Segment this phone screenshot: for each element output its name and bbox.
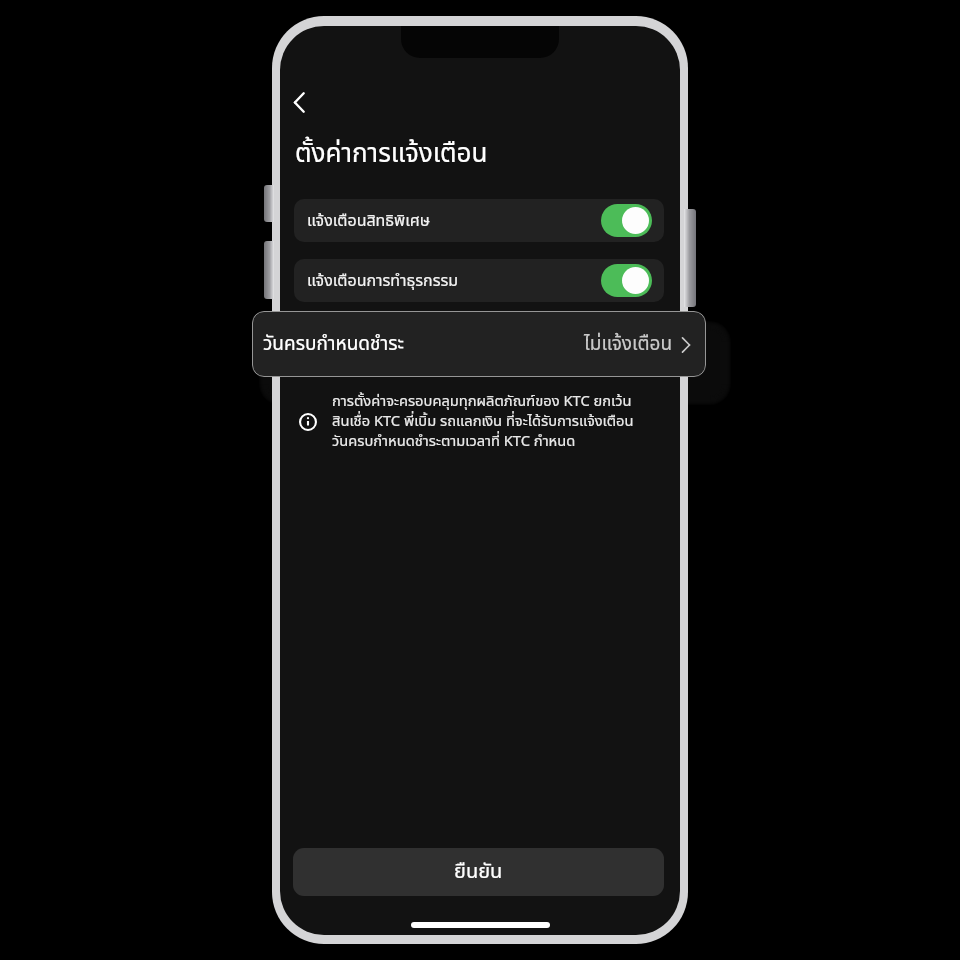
staticText: การตั้งค่าจะครอบคลุมทุกผลิตภัณฑ์ของ KTC … <box>332 390 634 453</box>
staticText: แจ้งเตือนสิทธิพิเศษ <box>307 209 431 233</box>
staticText: ตั้งค่าการแจ้งเตือน <box>295 134 488 173</box>
button[interactable]: ยืนยัน <box>293 848 664 896</box>
staticText: ไม่แจ้งเตือน <box>584 330 673 359</box>
button[interactable]: วันครบกำหนดชำระ <box>252 311 706 377</box>
staticText: แจ้งเตือนการทำธุรกรรม <box>307 269 459 293</box>
button[interactable] <box>294 319 664 362</box>
staticText: ยืนยัน <box>454 857 503 887</box>
staticText: วันครบกำหนดชำระ <box>263 330 404 359</box>
button[interactable]: แจ้งเตือนสิทธิพิเศษ <box>294 199 664 242</box>
button[interactable]: แจ้งเตือนการทำธุรกรรม <box>294 259 664 302</box>
button[interactable]: Back <box>280 83 318 121</box>
